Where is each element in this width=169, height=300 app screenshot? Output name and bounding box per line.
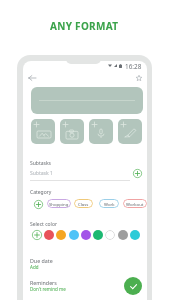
button[interactable]: Colour option: [81, 230, 91, 240]
button[interactable]: Work: [99, 199, 119, 208]
staticText: Workout: [126, 201, 144, 207]
staticText: Reminders: [30, 279, 57, 286]
button[interactable]: Colour option: [118, 230, 128, 240]
button[interactable]: Save: [124, 277, 142, 295]
staticText: Select color: [30, 221, 57, 228]
button[interactable]: Shopping: [47, 199, 71, 208]
staticText: Subtask 1: [30, 170, 53, 177]
button[interactable]: Colour option: [44, 230, 54, 240]
staticText: ANY FORMAT: [50, 19, 119, 33]
staticText: Subtasks: [30, 160, 51, 167]
button[interactable]: Take photo: [60, 119, 84, 144]
button[interactable]: [31, 87, 143, 114]
staticText: 16:28: [125, 62, 142, 71]
button[interactable]: Add image: [31, 119, 55, 144]
staticText: Shopping: [49, 201, 69, 207]
button[interactable]: Colour option: [93, 230, 103, 240]
button[interactable]: Favorite: [132, 71, 146, 85]
button[interactable]: Back: [25, 71, 39, 85]
button[interactable]: Workout: [123, 199, 147, 208]
button[interactable]: Add color: [31, 229, 43, 241]
button[interactable]: Draw: [118, 119, 142, 144]
button[interactable]: Colour option: [105, 230, 115, 240]
staticText: Work: [104, 201, 115, 207]
button[interactable]: Record audio: [89, 119, 113, 144]
staticText: Category: [30, 189, 52, 196]
button[interactable]: Colour option: [130, 230, 140, 240]
button[interactable]: Class: [74, 199, 93, 208]
button[interactable]: Colour option: [69, 230, 79, 240]
button[interactable]: Add category: [32, 198, 44, 210]
staticText: Add: [30, 264, 39, 270]
staticText: Due date: [30, 257, 53, 264]
button[interactable]: Colour option: [56, 230, 66, 240]
button[interactable]: Add subtask: [131, 167, 143, 179]
staticText: Class: [78, 201, 89, 207]
staticText: Don't remind me: [30, 286, 66, 292]
